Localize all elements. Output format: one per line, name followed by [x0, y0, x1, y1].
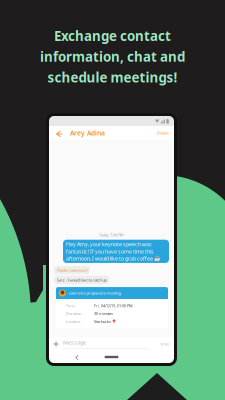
staticText: Time	[66, 303, 75, 308]
staticText: Lawrence proposed a meeting.	[68, 290, 121, 296]
staticText: Today 7:04 PM	[99, 232, 124, 238]
staticText: Fri, 04/12/19, 01:00 PM	[94, 303, 133, 308]
staticText: Thanks Lawrence!	[56, 267, 87, 273]
staticText: Details	[157, 130, 169, 136]
staticText: Hey Amy, your keynote speech was fantast…	[66, 241, 161, 262]
staticText: Starbucks	[94, 319, 111, 324]
button[interactable]: SEND	[156, 338, 174, 350]
staticText: SEND	[160, 341, 170, 347]
staticText: schedule meetings!	[47, 68, 177, 86]
staticText: Arey Adina	[70, 129, 105, 137]
staticText: Location	[66, 319, 80, 324]
staticText: Duration	[66, 311, 81, 316]
button[interactable]: Details	[152, 126, 174, 140]
staticText: Exchange contact	[54, 27, 171, 45]
staticText: Message	[63, 339, 86, 346]
staticText: information, chat and	[40, 48, 185, 65]
staticText: Sure - I would love to catch up	[56, 277, 106, 282]
button[interactable]: Add attachment	[49, 338, 63, 350]
button[interactable]: Back	[49, 126, 70, 139]
staticText: 30 minutes	[94, 311, 113, 316]
